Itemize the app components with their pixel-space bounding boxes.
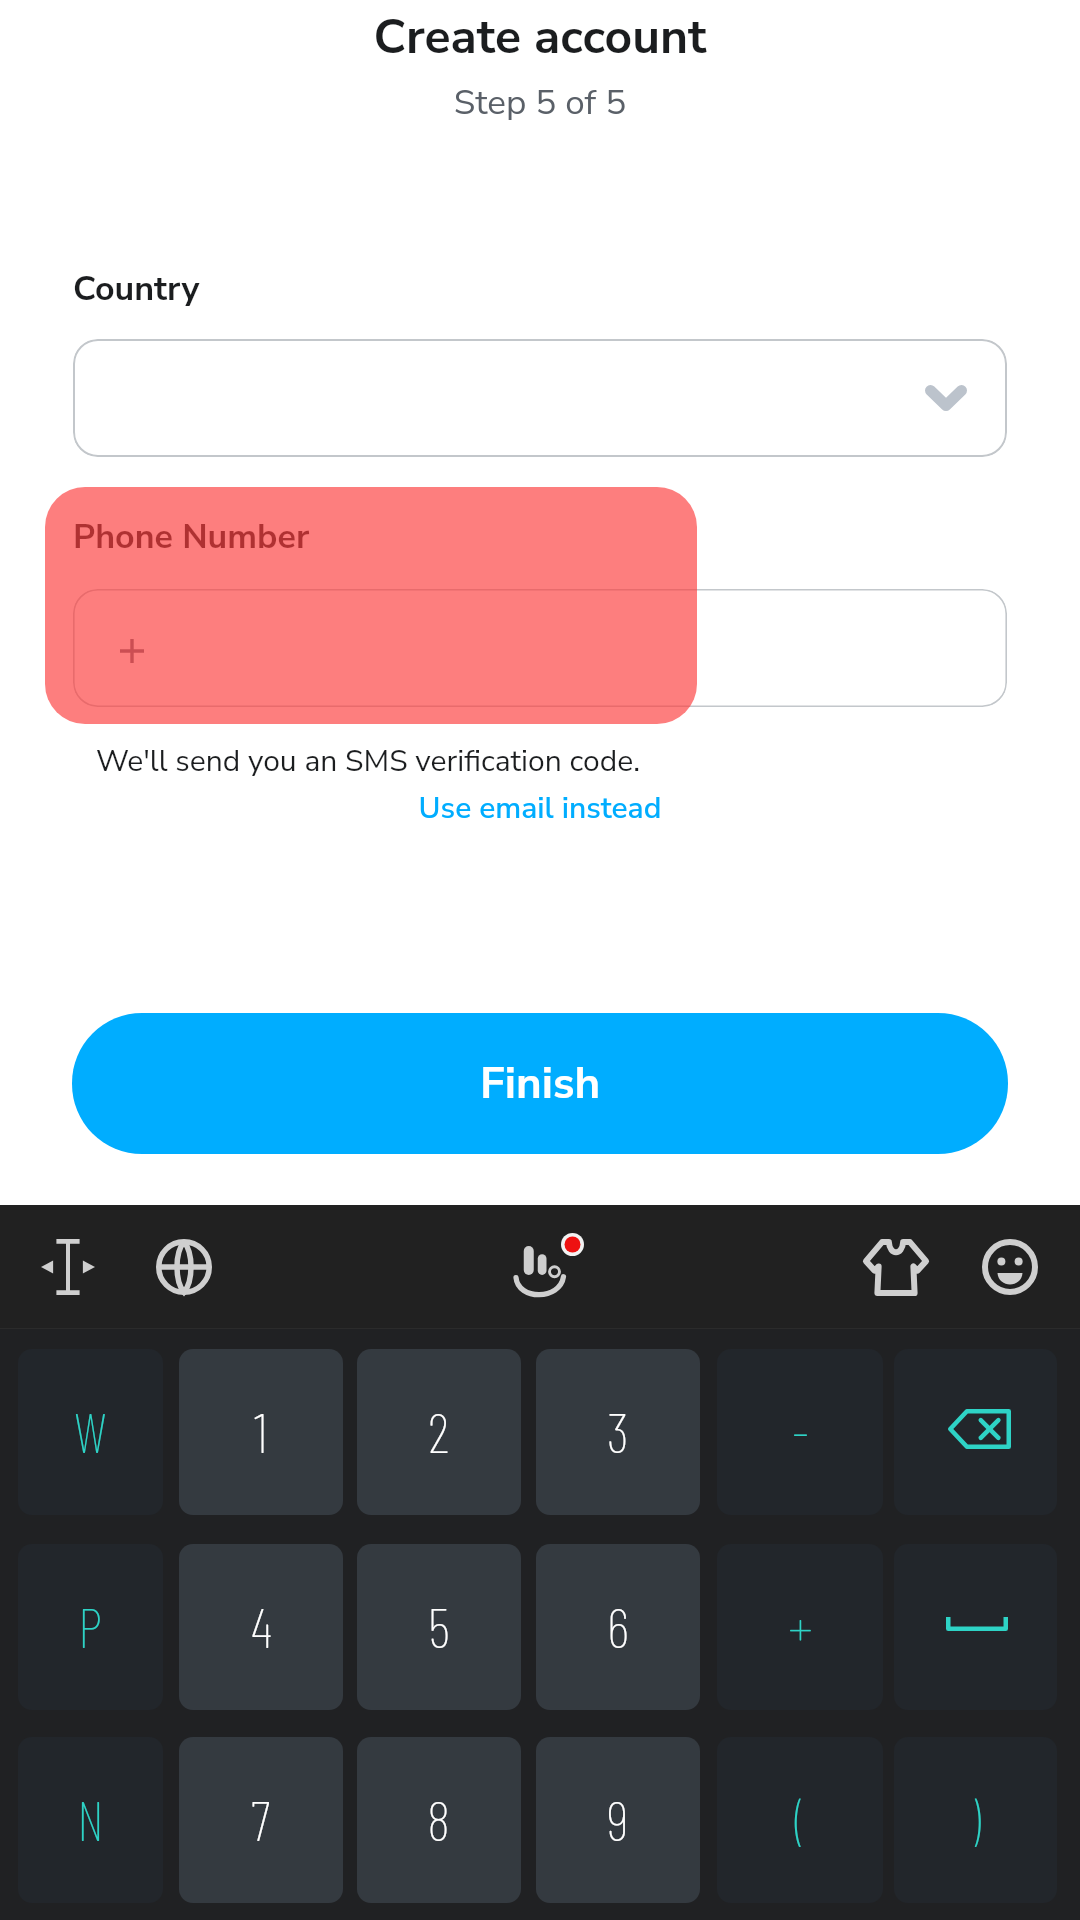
staticText: 6 — [607, 1592, 629, 1659]
button[interactable]: W — [18, 1349, 163, 1515]
staticText: - — [792, 1397, 809, 1464]
staticText: ( — [795, 1785, 805, 1852]
button[interactable]: Move cursor — [10, 1205, 126, 1329]
button[interactable]: Emoji — [952, 1205, 1068, 1329]
button[interactable]: 8 — [357, 1737, 521, 1903]
button[interactable]: 7 — [179, 1737, 343, 1903]
button[interactable]: - — [717, 1349, 883, 1515]
button[interactable]: 6 — [536, 1544, 700, 1710]
staticText: N — [77, 1785, 104, 1852]
other: Backspace — [948, 1409, 1011, 1449]
staticText: Create account — [0, 4, 1080, 69]
staticText: Country — [73, 266, 200, 312]
staticText: ) — [971, 1785, 981, 1852]
staticText: 9 — [607, 1785, 629, 1852]
staticText: 7 — [251, 1785, 271, 1852]
button[interactable]: Select country — [73, 339, 1007, 457]
button[interactable]: 1 — [179, 1349, 343, 1515]
button[interactable]: Backspace — [894, 1349, 1057, 1515]
button[interactable]: 9 — [536, 1737, 700, 1903]
staticText: 2 — [428, 1397, 450, 1464]
button[interactable]: 2 — [357, 1349, 521, 1515]
staticText: Phone Number — [73, 514, 310, 560]
button[interactable]: P — [18, 1544, 163, 1710]
button[interactable]: N — [18, 1737, 163, 1903]
staticText: + — [788, 1592, 813, 1659]
staticText: P — [78, 1592, 103, 1659]
other: Space — [946, 1617, 1008, 1631]
staticText: Step 5 of 5 — [0, 79, 1080, 127]
button[interactable]: Theme — [838, 1205, 954, 1329]
button[interactable]: 4 — [179, 1544, 343, 1710]
button[interactable]: Phone number input — [73, 589, 1007, 707]
button[interactable]: Keyboard settings — [488, 1205, 604, 1329]
staticText: 4 — [251, 1592, 272, 1659]
staticText: Finish — [480, 1054, 601, 1114]
staticText: We'll send you an SMS verification code. — [96, 741, 641, 782]
button[interactable]: 3 — [536, 1349, 700, 1515]
button[interactable]: 5 — [357, 1544, 521, 1710]
staticText: 1 — [254, 1397, 268, 1464]
button[interactable]: Space — [894, 1544, 1057, 1710]
button[interactable]: ) — [894, 1737, 1057, 1903]
staticText: 3 — [607, 1397, 629, 1464]
staticText: 5 — [428, 1592, 450, 1659]
button[interactable]: Finish — [72, 1013, 1008, 1154]
button[interactable]: + — [717, 1544, 883, 1710]
button[interactable]: Change language — [126, 1205, 242, 1329]
staticText: 8 — [427, 1785, 451, 1852]
staticText: W — [74, 1397, 107, 1464]
button[interactable]: ( — [717, 1737, 883, 1903]
button[interactable]: Use email instead — [0, 788, 1080, 829]
